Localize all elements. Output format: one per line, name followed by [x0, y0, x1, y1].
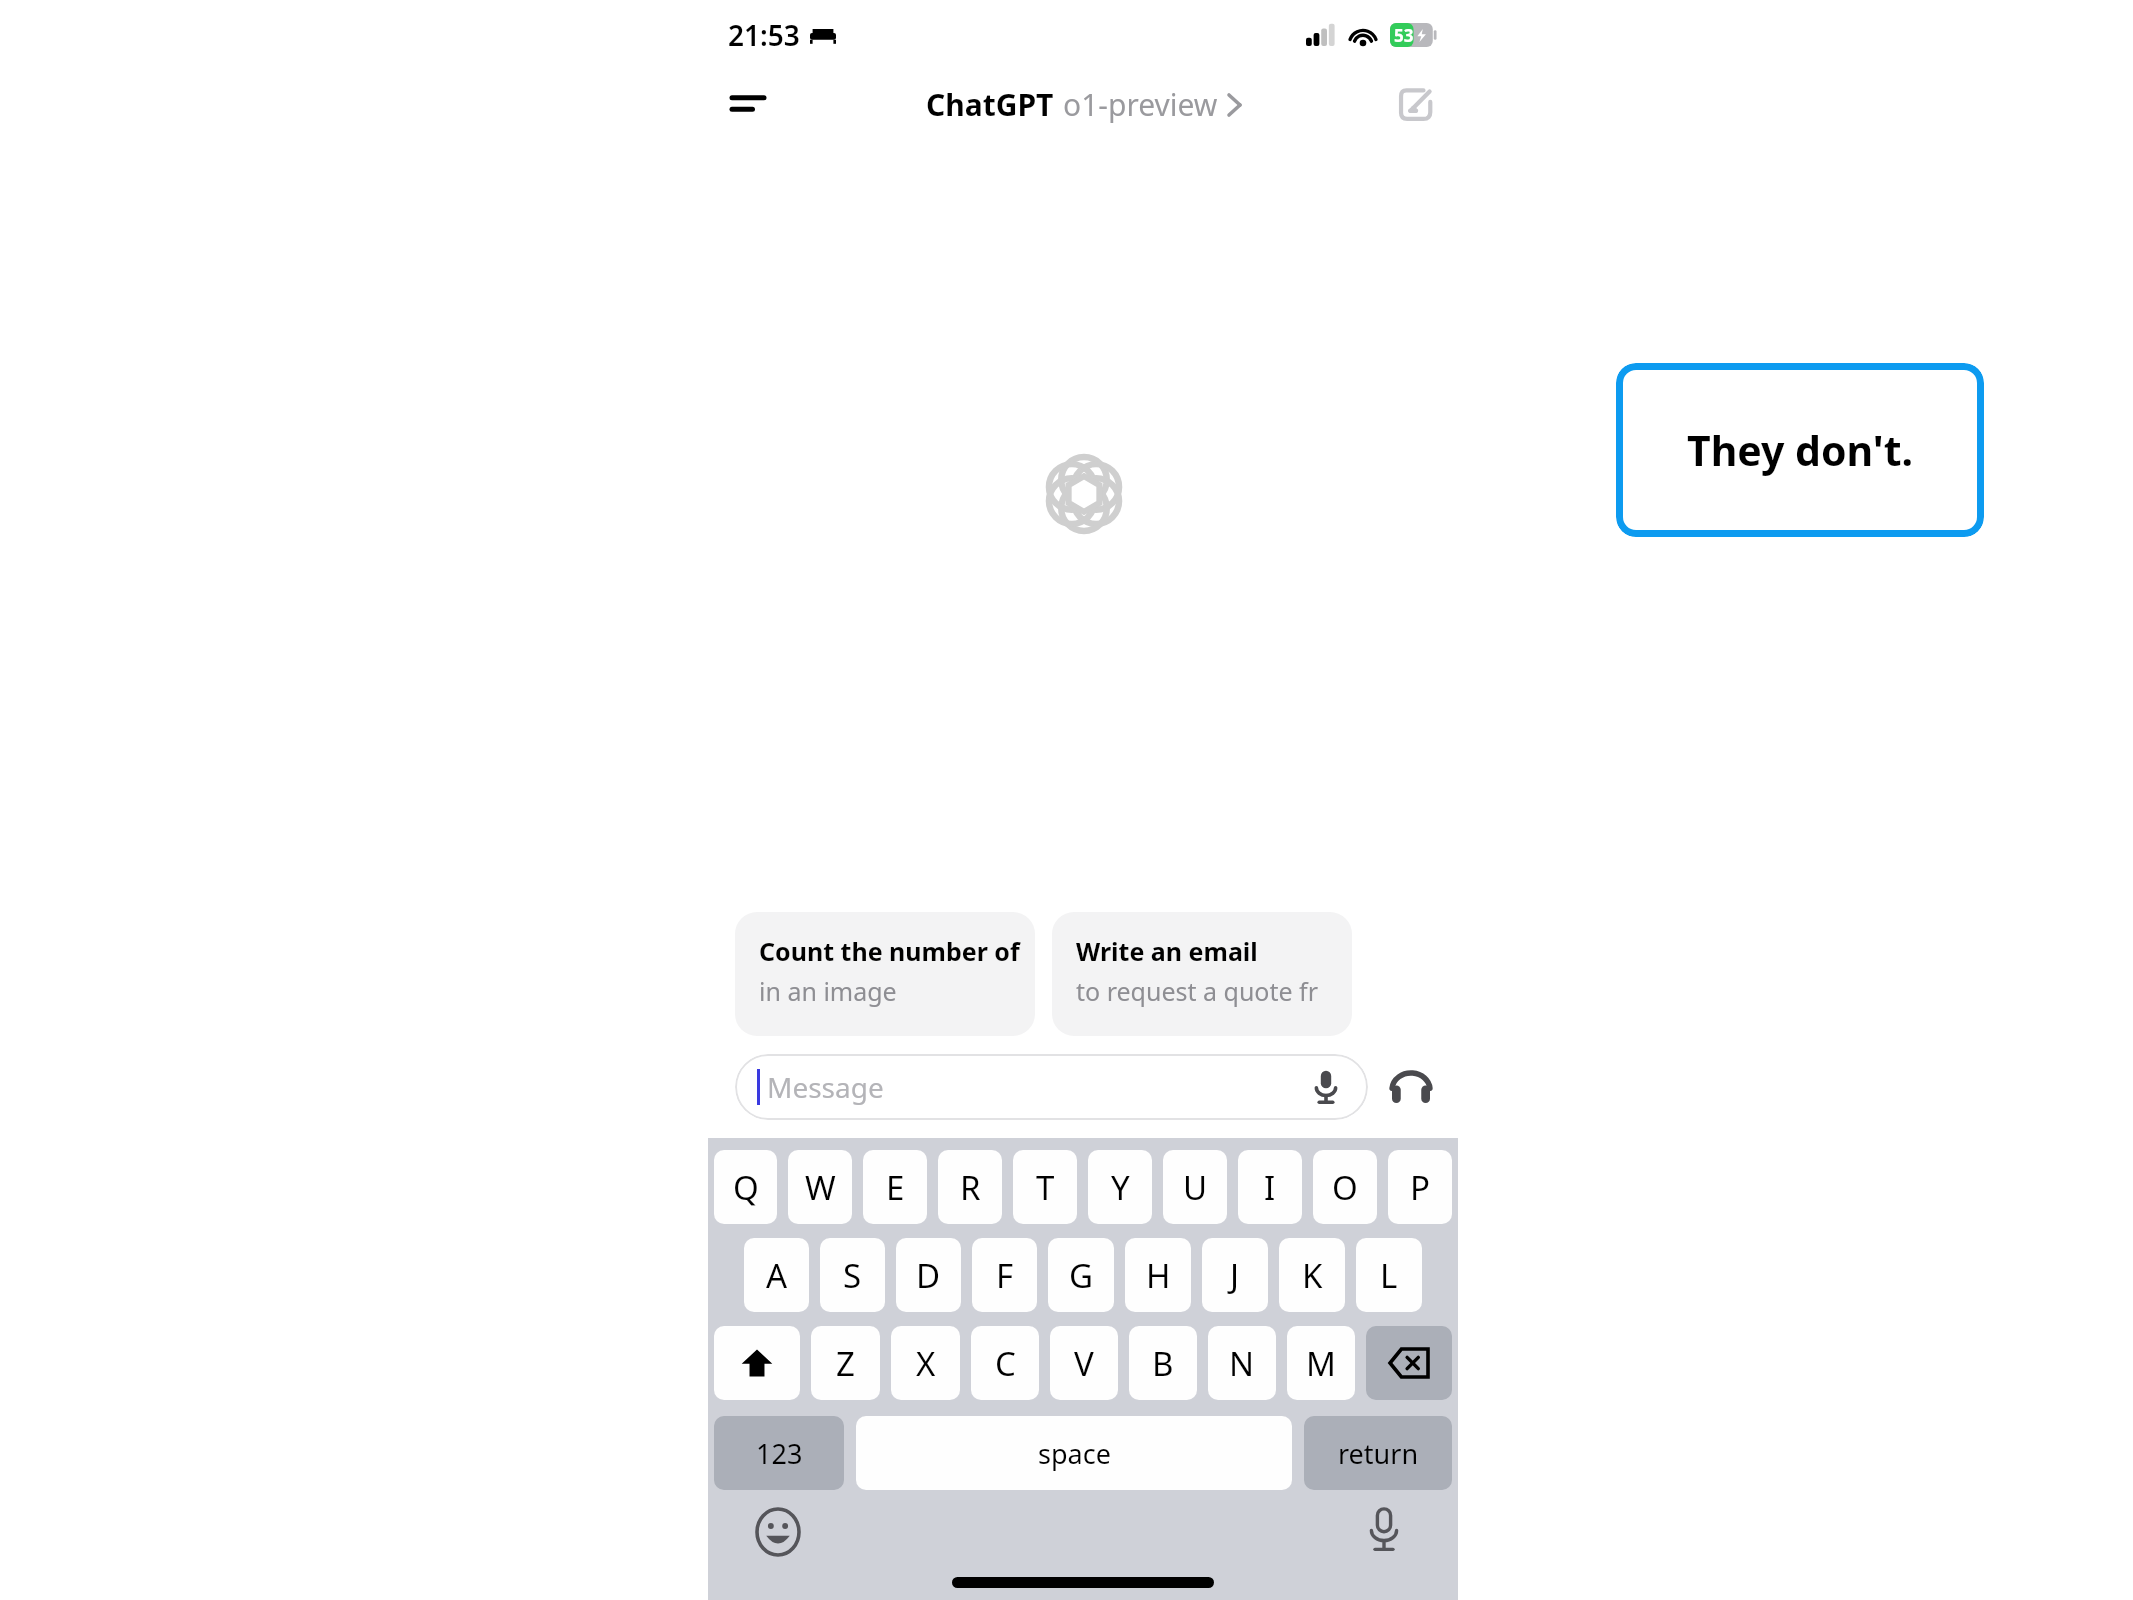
staticText: space	[1038, 1435, 1111, 1472]
staticText: E	[886, 1165, 905, 1210]
button[interactable]: B	[1129, 1326, 1197, 1400]
button[interactable]: V	[1050, 1326, 1118, 1400]
button[interactable]: P	[1388, 1150, 1452, 1224]
staticText: Z	[836, 1341, 855, 1386]
button[interactable]: A	[744, 1238, 809, 1312]
staticText: A	[766, 1253, 788, 1298]
button[interactable]: W	[788, 1150, 852, 1224]
button[interactable]: I	[1238, 1150, 1302, 1224]
button[interactable]: Message	[735, 1054, 1368, 1120]
staticText: Count the number of items	[759, 934, 1035, 968]
staticText: P	[1410, 1165, 1430, 1210]
staticText: N	[1229, 1341, 1255, 1386]
button[interactable]: Emoji	[752, 1506, 804, 1558]
button[interactable]: They don't.	[1616, 363, 1984, 537]
button[interactable]: C	[971, 1326, 1039, 1400]
staticText: 21:53	[728, 16, 800, 54]
button[interactable]: Dictate	[1358, 1504, 1410, 1556]
button[interactable]: New chat	[1388, 76, 1444, 132]
staticText: T	[1036, 1165, 1055, 1210]
button[interactable]: G	[1048, 1238, 1114, 1312]
button[interactable]: K	[1279, 1238, 1345, 1312]
staticText: ChatGPT	[926, 84, 1054, 125]
button[interactable]: Y	[1088, 1150, 1152, 1224]
staticText: o1-preview	[1063, 84, 1218, 125]
staticText: W	[805, 1165, 836, 1210]
button[interactable]: space	[856, 1416, 1292, 1490]
staticText: L	[1380, 1253, 1398, 1298]
staticText: J	[1230, 1253, 1240, 1298]
button[interactable]: S	[820, 1238, 885, 1312]
button[interactable]: O	[1313, 1150, 1377, 1224]
button[interactable]: 123	[714, 1416, 844, 1490]
staticText: Q	[733, 1165, 759, 1210]
button[interactable]: Voice mode	[1386, 1062, 1436, 1112]
button[interactable]: Voice input	[1306, 1067, 1346, 1107]
button[interactable]: J	[1202, 1238, 1268, 1312]
button[interactable]: H	[1125, 1238, 1191, 1312]
button[interactable]: T	[1013, 1150, 1077, 1224]
button[interactable]: R	[938, 1150, 1002, 1224]
button[interactable]: M	[1287, 1326, 1355, 1400]
button[interactable]: Backspace	[1366, 1326, 1452, 1400]
button[interactable]: D	[896, 1238, 961, 1312]
button[interactable]: Q	[714, 1150, 777, 1224]
staticText: 123	[756, 1435, 803, 1472]
button[interactable]: Count the number of items	[735, 912, 1035, 1036]
staticText: O	[1332, 1165, 1358, 1210]
button[interactable]: Shift	[714, 1326, 800, 1400]
staticText: to request a quote fr	[1076, 974, 1319, 1008]
staticText: G	[1069, 1253, 1094, 1298]
staticText: Write an email	[1076, 934, 1258, 968]
button[interactable]: Menu	[720, 76, 776, 132]
button[interactable]: E	[863, 1150, 927, 1224]
staticText: H	[1146, 1253, 1171, 1298]
staticText: R	[960, 1165, 981, 1210]
staticText: U	[1183, 1165, 1208, 1210]
staticText: 53	[1394, 24, 1414, 47]
button[interactable]: U	[1163, 1150, 1227, 1224]
staticText: B	[1152, 1341, 1174, 1386]
staticText: F	[996, 1253, 1014, 1298]
staticText: M	[1306, 1341, 1336, 1386]
button[interactable]: N	[1208, 1326, 1276, 1400]
staticText: X	[916, 1341, 936, 1386]
staticText: I	[1264, 1165, 1276, 1210]
staticText: Message	[767, 1068, 884, 1106]
staticText: S	[843, 1253, 862, 1298]
staticText: They don't.	[1687, 422, 1914, 478]
staticText: in an image	[759, 974, 897, 1008]
button[interactable]: Write an email	[1052, 912, 1352, 1036]
button[interactable]: F	[972, 1238, 1037, 1312]
button[interactable]: Z	[811, 1326, 880, 1400]
staticText: C	[995, 1341, 1016, 1386]
button[interactable]: L	[1356, 1238, 1422, 1312]
button[interactable]: ChatGPT	[926, 84, 1241, 125]
staticText: K	[1302, 1253, 1323, 1298]
staticText: Y	[1111, 1165, 1130, 1210]
staticText: D	[916, 1253, 941, 1298]
button[interactable]: return	[1304, 1416, 1452, 1490]
staticText: return	[1338, 1435, 1419, 1472]
button[interactable]: X	[891, 1326, 960, 1400]
staticText: V	[1074, 1341, 1094, 1386]
